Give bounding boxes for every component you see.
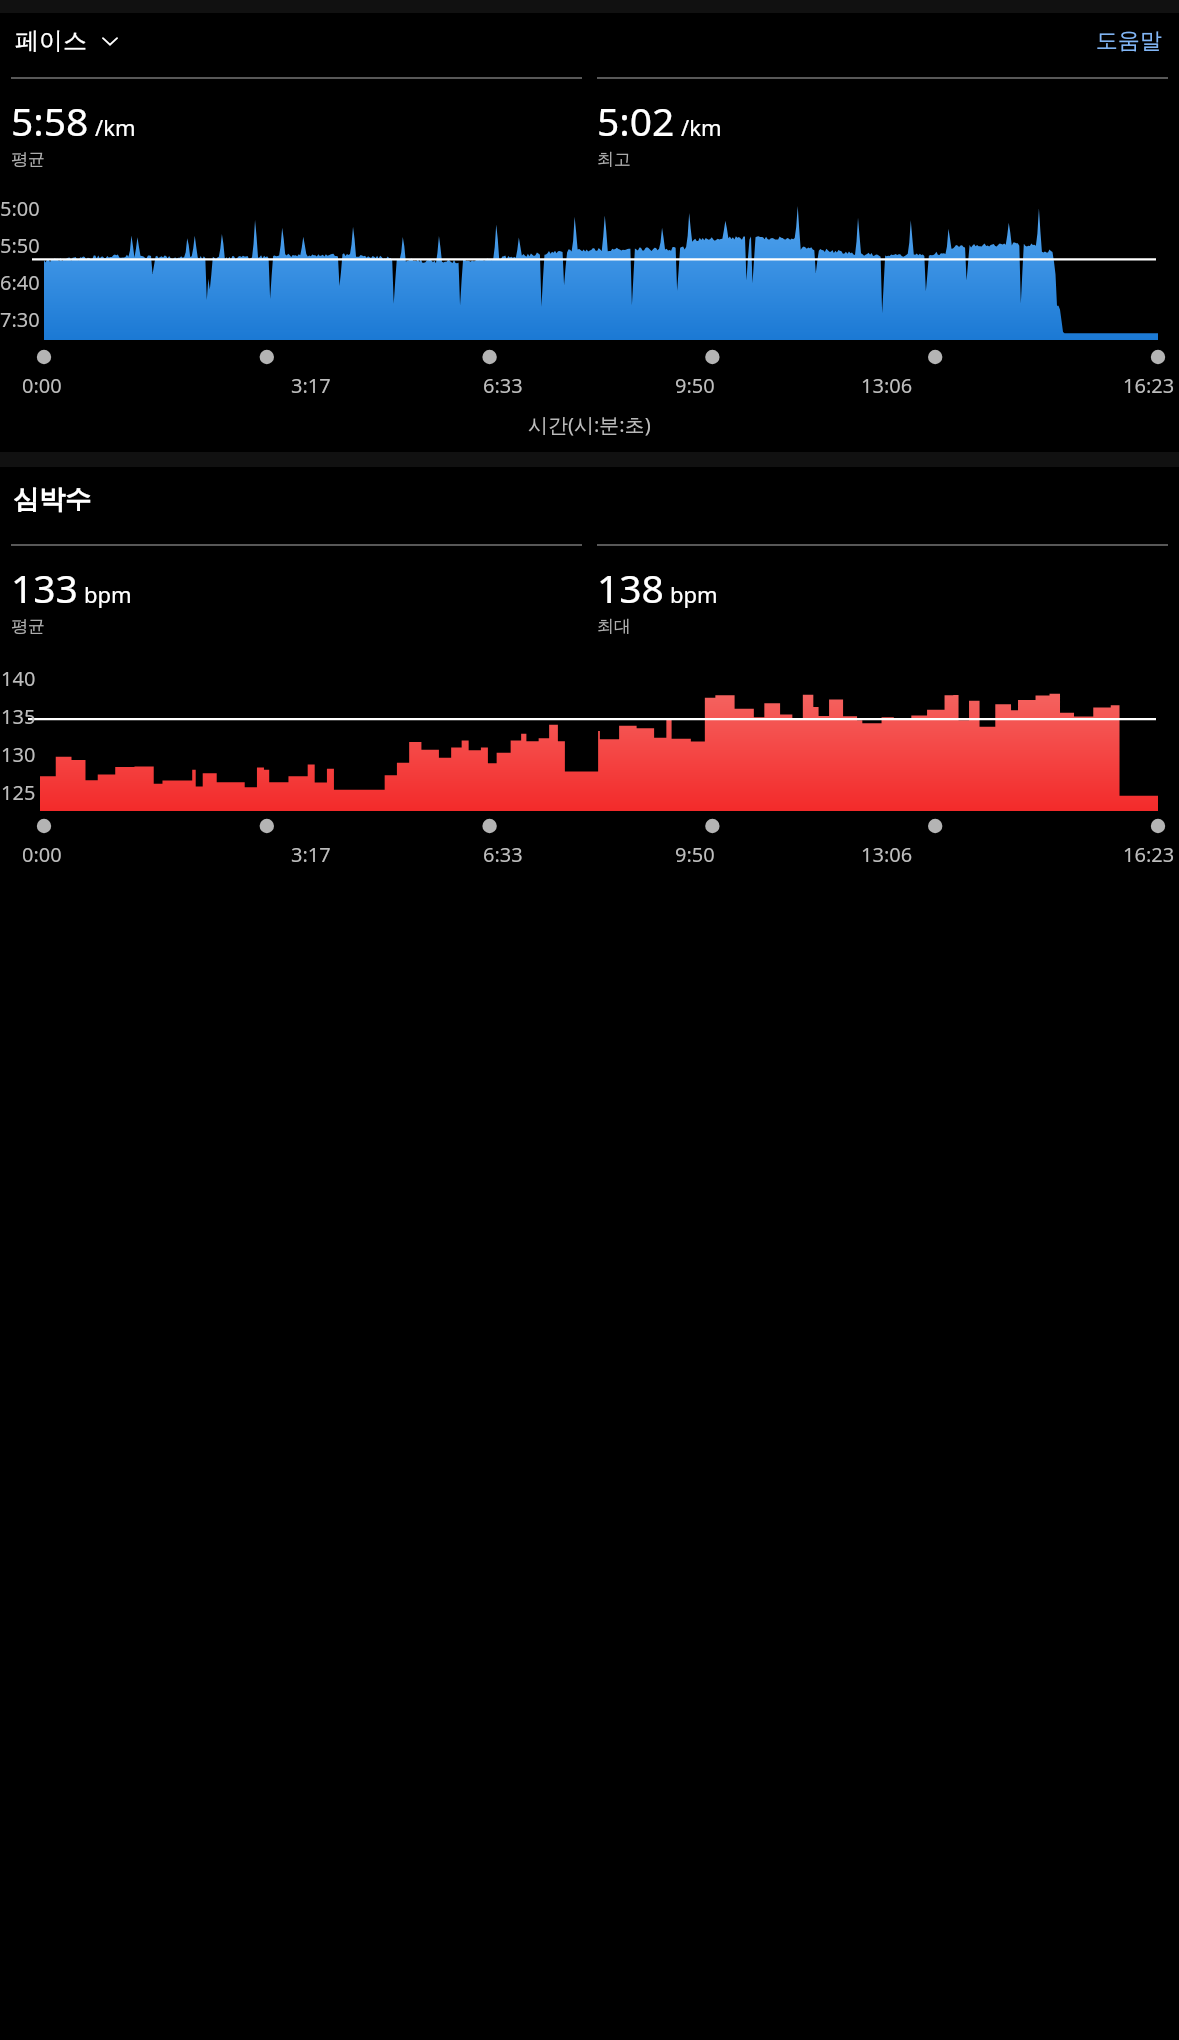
button[interactable]: 도움말	[1090, 19, 1168, 63]
staticText: 평균	[11, 616, 45, 637]
staticText: 0:00	[22, 372, 62, 399]
staticText: 평균	[11, 149, 45, 170]
button[interactable]: 페이스	[11, 20, 125, 62]
staticText: 페이스	[15, 26, 87, 56]
staticText: 133	[11, 561, 78, 614]
staticText: 140	[1, 665, 36, 692]
staticText: 3:17	[291, 372, 331, 399]
staticText: 시간(시:분:초)	[528, 411, 651, 438]
staticText: 16:23	[1123, 372, 1175, 399]
staticText: 도움말	[1096, 27, 1162, 55]
staticText: 135	[1, 703, 36, 730]
staticText: bpm	[84, 579, 132, 609]
staticText: 0:00	[22, 841, 62, 868]
staticText: /km	[95, 112, 136, 142]
staticText: 16:23	[1123, 841, 1175, 868]
staticText: 6:33	[483, 372, 523, 399]
staticText: 130	[1, 741, 36, 768]
staticText: 최대	[597, 616, 631, 637]
staticText: 3:17	[291, 841, 331, 868]
staticText: bpm	[670, 579, 718, 609]
staticText: 9:50	[675, 841, 715, 868]
staticText: 6:33	[483, 841, 523, 868]
staticText: 심박수	[13, 483, 91, 516]
staticText: 5:58	[11, 94, 89, 147]
staticText: 138	[597, 561, 664, 614]
staticText: 5:50	[0, 232, 40, 259]
staticText: 13:06	[861, 841, 913, 868]
staticText: 9:50	[675, 372, 715, 399]
staticText: 13:06	[861, 372, 913, 399]
staticText: 최고	[597, 149, 631, 170]
staticText: 125	[1, 779, 36, 806]
other: Change metric	[99, 30, 121, 52]
staticText: /km	[681, 112, 722, 142]
staticText: 6:40	[0, 269, 40, 296]
staticText: 5:02	[597, 94, 675, 147]
staticText: 7:30	[0, 306, 40, 333]
staticText: 5:00	[0, 195, 40, 222]
